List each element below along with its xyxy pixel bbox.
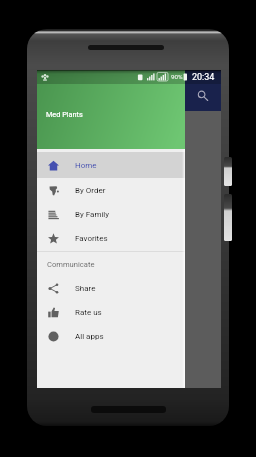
button[interactable]: All apps [37, 324, 185, 348]
button[interactable]: Search [194, 87, 211, 104]
button[interactable]: By Order [37, 178, 185, 202]
staticText: 90% [171, 73, 183, 80]
staticText: Home [75, 161, 97, 170]
button[interactable]: Share [37, 276, 185, 300]
staticText: Communicate [47, 260, 95, 269]
staticText: By Order [75, 186, 106, 195]
staticText: Rate us [75, 308, 102, 317]
staticText: All apps [75, 332, 104, 341]
button[interactable]: Home [37, 152, 185, 178]
staticText: 20:34 [192, 72, 215, 83]
button[interactable]: Favorites [37, 226, 185, 250]
staticText: By Family [75, 210, 110, 219]
staticText: Med Plants [46, 110, 83, 119]
button[interactable]: By Family [37, 202, 185, 226]
staticText: Share [75, 284, 96, 293]
button[interactable]: Rate us [37, 300, 185, 324]
staticText: Favorites [75, 234, 108, 243]
